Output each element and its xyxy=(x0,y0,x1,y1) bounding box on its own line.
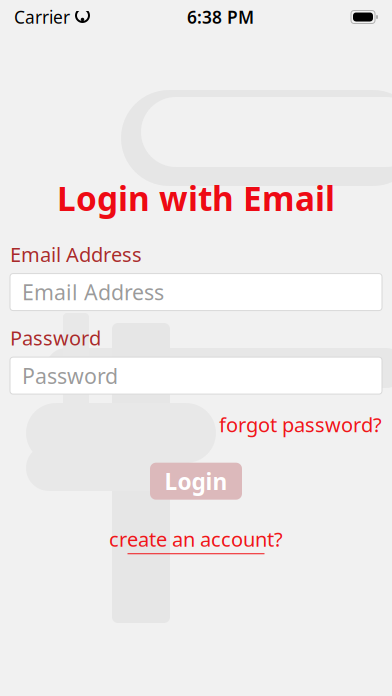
staticText: create an account? xyxy=(109,526,283,552)
staticText: Password xyxy=(10,325,101,351)
button[interactable]: forgot password? xyxy=(219,408,382,441)
staticText: Login with Email xyxy=(57,176,335,220)
staticText: Login xyxy=(164,466,227,496)
button[interactable]: create an account? xyxy=(109,526,283,554)
staticText: Carrier xyxy=(14,5,70,28)
staticText: forgot password? xyxy=(219,411,382,438)
staticText: Email Address xyxy=(22,278,164,306)
button[interactable]: Login xyxy=(150,463,242,500)
staticText: Email Address xyxy=(10,241,142,268)
staticText: 6:38 PM xyxy=(187,5,254,28)
staticText: Password xyxy=(22,361,118,390)
